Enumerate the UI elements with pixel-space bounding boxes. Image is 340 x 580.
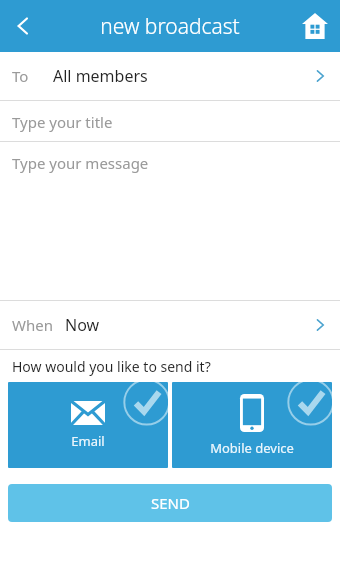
button[interactable]: SEND [8, 484, 332, 522]
staticText: Now [65, 314, 100, 336]
button[interactable]: Email [8, 382, 168, 468]
button[interactable]: Home [290, 0, 340, 52]
staticText: When [12, 315, 53, 335]
staticText: How would you like to send it? [12, 357, 211, 376]
button[interactable]: Type your message [0, 142, 340, 252]
staticText: Type your title [12, 112, 113, 132]
button[interactable]: Back [0, 0, 46, 52]
staticText: Email [71, 432, 105, 450]
button[interactable]: Mobile device [172, 382, 332, 468]
button[interactable]: Type your title [0, 101, 340, 141]
button[interactable]: When [0, 301, 340, 349]
staticText: SEND [151, 493, 190, 513]
staticText: new broadcast [100, 12, 240, 41]
staticText: Type your message [12, 153, 149, 173]
staticText: To [12, 66, 29, 86]
staticText: All members [53, 65, 148, 87]
button[interactable]: To [0, 52, 340, 100]
staticText: Mobile device [210, 439, 294, 457]
